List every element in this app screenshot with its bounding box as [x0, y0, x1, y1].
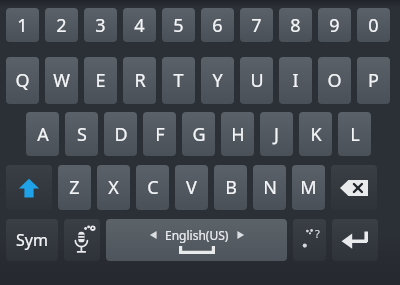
staticText: L	[350, 122, 360, 147]
button[interactable]: Z	[58, 165, 91, 210]
staticText: D	[114, 122, 128, 147]
staticText: M	[300, 175, 317, 200]
staticText: C	[147, 175, 159, 200]
button[interactable]: W	[45, 57, 78, 104]
staticText: S	[77, 122, 87, 147]
staticText: A	[37, 122, 49, 147]
button[interactable]: V	[175, 165, 208, 210]
button[interactable]: Q	[6, 57, 39, 104]
staticText: 4	[134, 13, 145, 38]
staticText: P	[368, 68, 379, 93]
staticText: U	[250, 68, 264, 93]
button[interactable]: L	[338, 112, 371, 156]
staticText: 8	[290, 13, 301, 38]
staticText: R	[134, 68, 146, 93]
button[interactable]: Shift	[6, 165, 52, 210]
staticText: Sym	[16, 229, 48, 251]
button[interactable]: I	[279, 57, 312, 104]
button[interactable]: X	[97, 165, 130, 210]
button[interactable]: Y	[201, 57, 234, 104]
staticText: T	[173, 68, 184, 93]
button[interactable]: G	[182, 112, 215, 156]
staticText: B	[225, 175, 237, 200]
staticText: F	[155, 122, 165, 147]
button[interactable]: Voice input settings	[64, 219, 100, 261]
staticText: N	[263, 175, 277, 200]
button[interactable]: C	[136, 165, 169, 210]
staticText: Z	[69, 175, 80, 200]
button[interactable]: 9	[318, 8, 351, 42]
button[interactable]: Period and punctuation	[293, 219, 326, 261]
staticText: E	[95, 68, 106, 93]
staticText: W	[53, 68, 70, 93]
button[interactable]: Sym	[6, 219, 58, 261]
button[interactable]: K	[299, 112, 332, 156]
staticText: V	[186, 175, 197, 200]
staticText: 2	[56, 13, 67, 38]
staticText: Y	[212, 68, 223, 93]
button[interactable]: F	[143, 112, 176, 156]
staticText: G	[192, 122, 206, 147]
staticText: J	[274, 122, 279, 147]
button[interactable]: M	[292, 165, 325, 210]
button[interactable]: Space, English(US)	[106, 219, 287, 261]
staticText: 1	[17, 13, 28, 38]
staticText: I	[292, 68, 299, 93]
staticText: English(US)	[165, 227, 229, 243]
button[interactable]: O	[318, 57, 351, 104]
button[interactable]: 1	[6, 8, 39, 42]
button[interactable]: H	[221, 112, 254, 156]
button[interactable]: 4	[123, 8, 156, 42]
staticText: K	[310, 122, 322, 147]
button[interactable]: 3	[84, 8, 117, 42]
button[interactable]: 8	[279, 8, 312, 42]
button[interactable]: 6	[201, 8, 234, 42]
button[interactable]: A	[26, 112, 59, 156]
staticText: 7	[251, 13, 262, 38]
staticText: H	[231, 122, 245, 147]
button[interactable]: E	[84, 57, 117, 104]
button[interactable]: B	[214, 165, 247, 210]
button[interactable]: U	[240, 57, 273, 104]
staticText: X	[108, 175, 119, 200]
button[interactable]: S	[65, 112, 98, 156]
button[interactable]: 0	[357, 8, 390, 42]
button[interactable]: Backspace	[331, 165, 377, 210]
staticText: O	[327, 68, 342, 93]
staticText: 6	[212, 13, 223, 38]
button[interactable]: 2	[45, 8, 78, 42]
staticText: ?	[315, 226, 320, 241]
button[interactable]: T	[162, 57, 195, 104]
button[interactable]: P	[357, 57, 390, 104]
button[interactable]: Enter	[332, 219, 378, 261]
button[interactable]: 7	[240, 8, 273, 42]
button[interactable]: D	[104, 112, 137, 156]
staticText: Q	[15, 68, 30, 93]
staticText: 0	[368, 13, 379, 38]
staticText: 5	[173, 13, 184, 38]
button[interactable]: R	[123, 57, 156, 104]
staticText: 9	[329, 13, 340, 38]
button[interactable]: N	[253, 165, 286, 210]
button[interactable]: 5	[162, 8, 195, 42]
button[interactable]: J	[260, 112, 293, 156]
staticText: 3	[95, 13, 106, 38]
